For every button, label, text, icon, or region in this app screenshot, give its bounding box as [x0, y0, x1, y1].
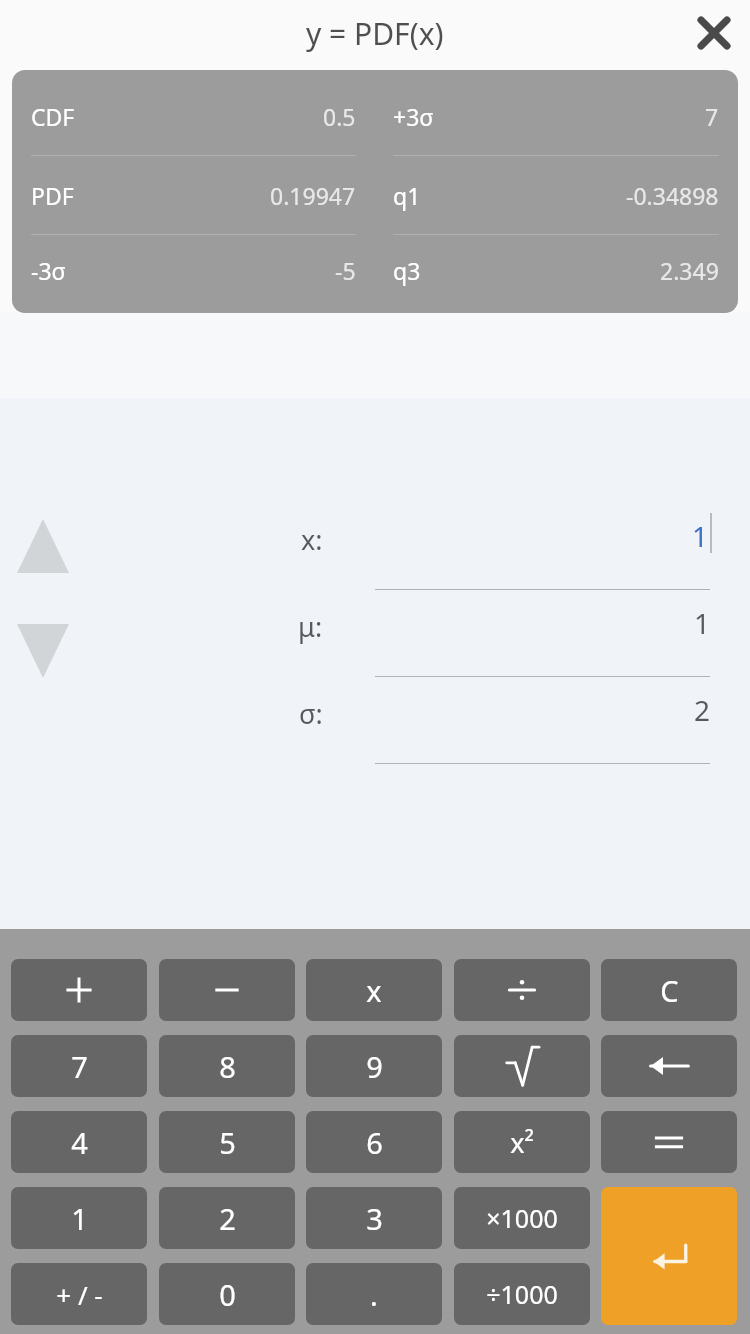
button[interactable]: Equals [601, 1111, 737, 1173]
button[interactable]: σ: [0, 677, 750, 764]
staticText: σ: [299, 695, 323, 732]
button[interactable]: 5 [159, 1111, 295, 1173]
button[interactable]: Close [678, 0, 750, 68]
staticText: ÷1000 [486, 1277, 558, 1311]
staticText: y = PDF(x) [306, 13, 444, 54]
button[interactable]: + / - [11, 1263, 147, 1325]
button[interactable]: 9 [306, 1035, 442, 1097]
button[interactable]: ÷1000 [454, 1263, 590, 1325]
staticText: 2 [693, 691, 710, 729]
button[interactable]: 8 [159, 1035, 295, 1097]
staticText: 7 [705, 101, 719, 132]
button[interactable]: Next field [0, 613, 86, 689]
staticText: + / - [56, 1277, 103, 1312]
staticText: x [366, 971, 382, 1010]
staticText: x: [301, 521, 323, 558]
staticText: 0 [219, 1275, 236, 1314]
button[interactable]: 4 [11, 1111, 147, 1173]
button[interactable]: 1 [11, 1187, 147, 1249]
staticText: μ: [298, 608, 323, 645]
staticText: 2.349 [660, 255, 719, 286]
button[interactable]: PDF [31, 156, 356, 234]
staticText: 4 [71, 1123, 88, 1162]
staticText: 1 [71, 1199, 88, 1238]
button[interactable]: 2 [159, 1187, 295, 1249]
button[interactable]: q1 [393, 156, 719, 234]
staticText: 5 [219, 1123, 236, 1162]
button[interactable]: +3σ [393, 77, 719, 155]
button[interactable]: Backspace [601, 1035, 737, 1097]
button[interactable]: C [601, 959, 737, 1021]
button[interactable]: Previous field [0, 508, 86, 584]
staticText: -3σ [31, 255, 66, 286]
button[interactable]: x² [454, 1111, 590, 1173]
button[interactable]: x [306, 959, 442, 1021]
staticText: 0.19947 [270, 180, 356, 211]
button[interactable]: 0 [159, 1263, 295, 1325]
staticText: 1 [691, 517, 708, 555]
button[interactable]: μ: [0, 590, 750, 677]
staticText: 3 [366, 1199, 383, 1238]
button[interactable]: Minus [159, 959, 295, 1021]
button[interactable]: 6 [306, 1111, 442, 1173]
staticText: 9 [366, 1047, 383, 1086]
button[interactable]: Plus [11, 959, 147, 1021]
button[interactable]: x: [0, 503, 750, 590]
staticText: -5 [335, 255, 356, 286]
staticText: 2 [219, 1199, 236, 1238]
staticText: 0.5 [323, 101, 356, 132]
button[interactable]: -3σ [31, 235, 356, 306]
staticText: ×1000 [486, 1201, 558, 1235]
staticText: q3 [393, 255, 421, 286]
staticText: PDF [31, 180, 74, 211]
button[interactable]: CDF [31, 77, 356, 155]
staticText: -0.34898 [626, 180, 719, 211]
button[interactable]: q3 [393, 235, 719, 306]
staticText: CDF [31, 101, 75, 132]
staticText: +3σ [393, 101, 434, 132]
button[interactable]: ×1000 [454, 1187, 590, 1249]
staticText: . [370, 1275, 378, 1314]
button[interactable]: Square root [454, 1035, 590, 1097]
staticText: x² [510, 1124, 534, 1161]
button[interactable]: Enter [601, 1187, 737, 1325]
staticText: 1 [693, 604, 710, 642]
staticText: 6 [366, 1123, 383, 1162]
staticText: q1 [393, 180, 421, 211]
staticText: 7 [71, 1047, 88, 1086]
staticText: C [660, 971, 679, 1010]
button[interactable]: . [306, 1263, 442, 1325]
button[interactable]: 3 [306, 1187, 442, 1249]
staticText: 8 [219, 1047, 236, 1086]
button[interactable]: Divide [454, 959, 590, 1021]
button[interactable]: 7 [11, 1035, 147, 1097]
